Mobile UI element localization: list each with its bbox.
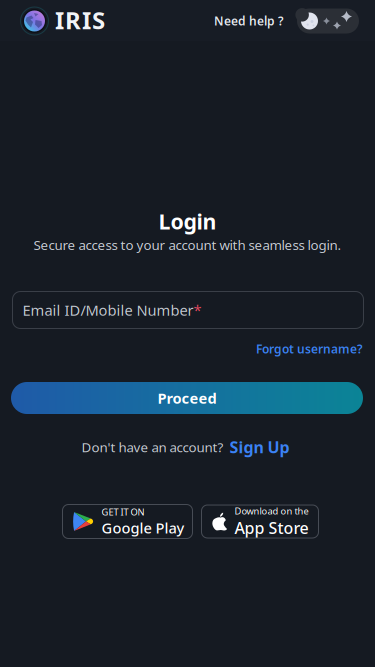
staticText: Secure access to your account with seaml… [33, 236, 341, 254]
staticText: IRIS [55, 4, 105, 36]
staticText: GET IT ON [101, 506, 144, 518]
staticText: * [193, 300, 201, 320]
button[interactable]: GET IT ON [62, 504, 192, 538]
staticText: Login [158, 207, 216, 235]
staticText: Email ID/Mobile Number [22, 300, 193, 320]
staticText: App Store [234, 517, 308, 538]
button[interactable]: Toggle dark mode [297, 8, 359, 33]
staticText: Need help ? [214, 13, 284, 29]
staticText: Forgot username? [256, 341, 363, 357]
button[interactable]: Need help ? [214, 13, 284, 29]
button[interactable]: Forgot username? [12, 341, 363, 357]
button[interactable]: Sign Up [229, 436, 289, 458]
staticText: Sign Up [229, 436, 289, 458]
button[interactable]: Download on the [201, 505, 318, 538]
staticText: Proceed [157, 388, 216, 408]
staticText: Google Play [101, 518, 184, 537]
staticText: Download on the [234, 505, 308, 517]
button[interactable]: Proceed [11, 382, 363, 414]
staticText: Don't have an account? [81, 438, 223, 456]
